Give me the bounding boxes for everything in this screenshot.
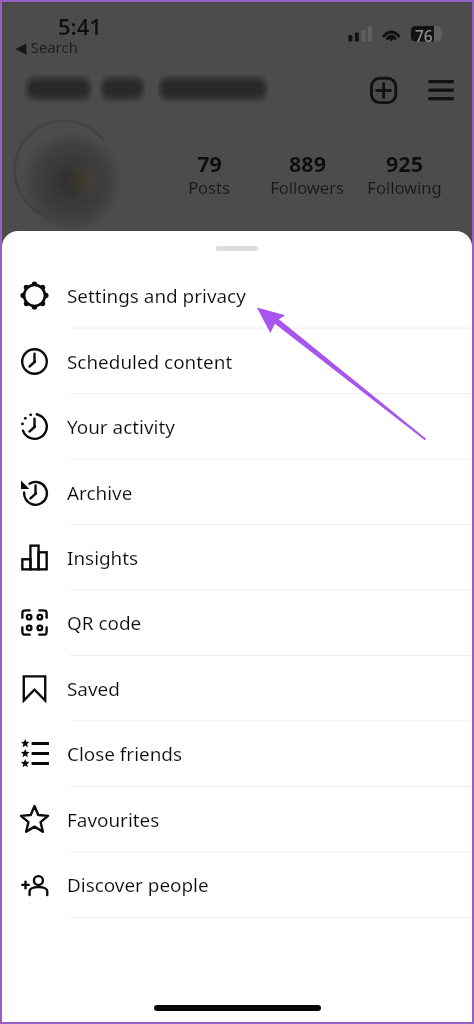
staticText: 925 xyxy=(386,149,423,178)
staticText: Scheduled content xyxy=(67,349,233,375)
staticText: Followers xyxy=(270,176,344,198)
button[interactable]: Archive xyxy=(2,460,472,525)
button[interactable]: Close friends xyxy=(2,721,472,786)
button[interactable]: 889 xyxy=(252,149,362,200)
staticText: Settings and privacy xyxy=(67,283,246,309)
button[interactable]: Favourites xyxy=(2,787,472,852)
staticText: Following xyxy=(367,176,442,198)
button[interactable]: QR code xyxy=(2,590,472,655)
button[interactable]: Open menu xyxy=(424,73,458,107)
staticText: Favourites xyxy=(67,807,160,833)
button[interactable]: 925 xyxy=(349,149,459,200)
staticText: Close friends xyxy=(67,741,183,767)
staticText: 889 xyxy=(289,149,326,178)
button[interactable]: Your activity xyxy=(2,394,472,459)
staticText: 79 xyxy=(197,149,222,178)
button[interactable]: Insights xyxy=(2,525,472,590)
staticText: Discover people xyxy=(67,872,209,898)
button[interactable]: Create new post xyxy=(366,73,400,107)
staticText: ◀ Search xyxy=(15,37,78,57)
staticText: Insights xyxy=(67,545,139,571)
button[interactable]: Saved xyxy=(2,656,472,721)
staticText: 5:41 xyxy=(58,11,102,41)
button[interactable]: Discover people xyxy=(2,852,472,917)
staticText: QR code xyxy=(67,610,142,636)
staticText: Posts xyxy=(188,176,230,198)
button[interactable]: 79 xyxy=(154,149,264,200)
staticText: 76 xyxy=(415,25,433,46)
staticText: Your activity xyxy=(67,414,175,440)
staticText: Saved xyxy=(67,676,120,702)
staticText: Archive xyxy=(67,480,133,506)
button[interactable]: Scheduled content xyxy=(2,329,472,394)
button[interactable]: Settings and privacy xyxy=(2,263,472,328)
